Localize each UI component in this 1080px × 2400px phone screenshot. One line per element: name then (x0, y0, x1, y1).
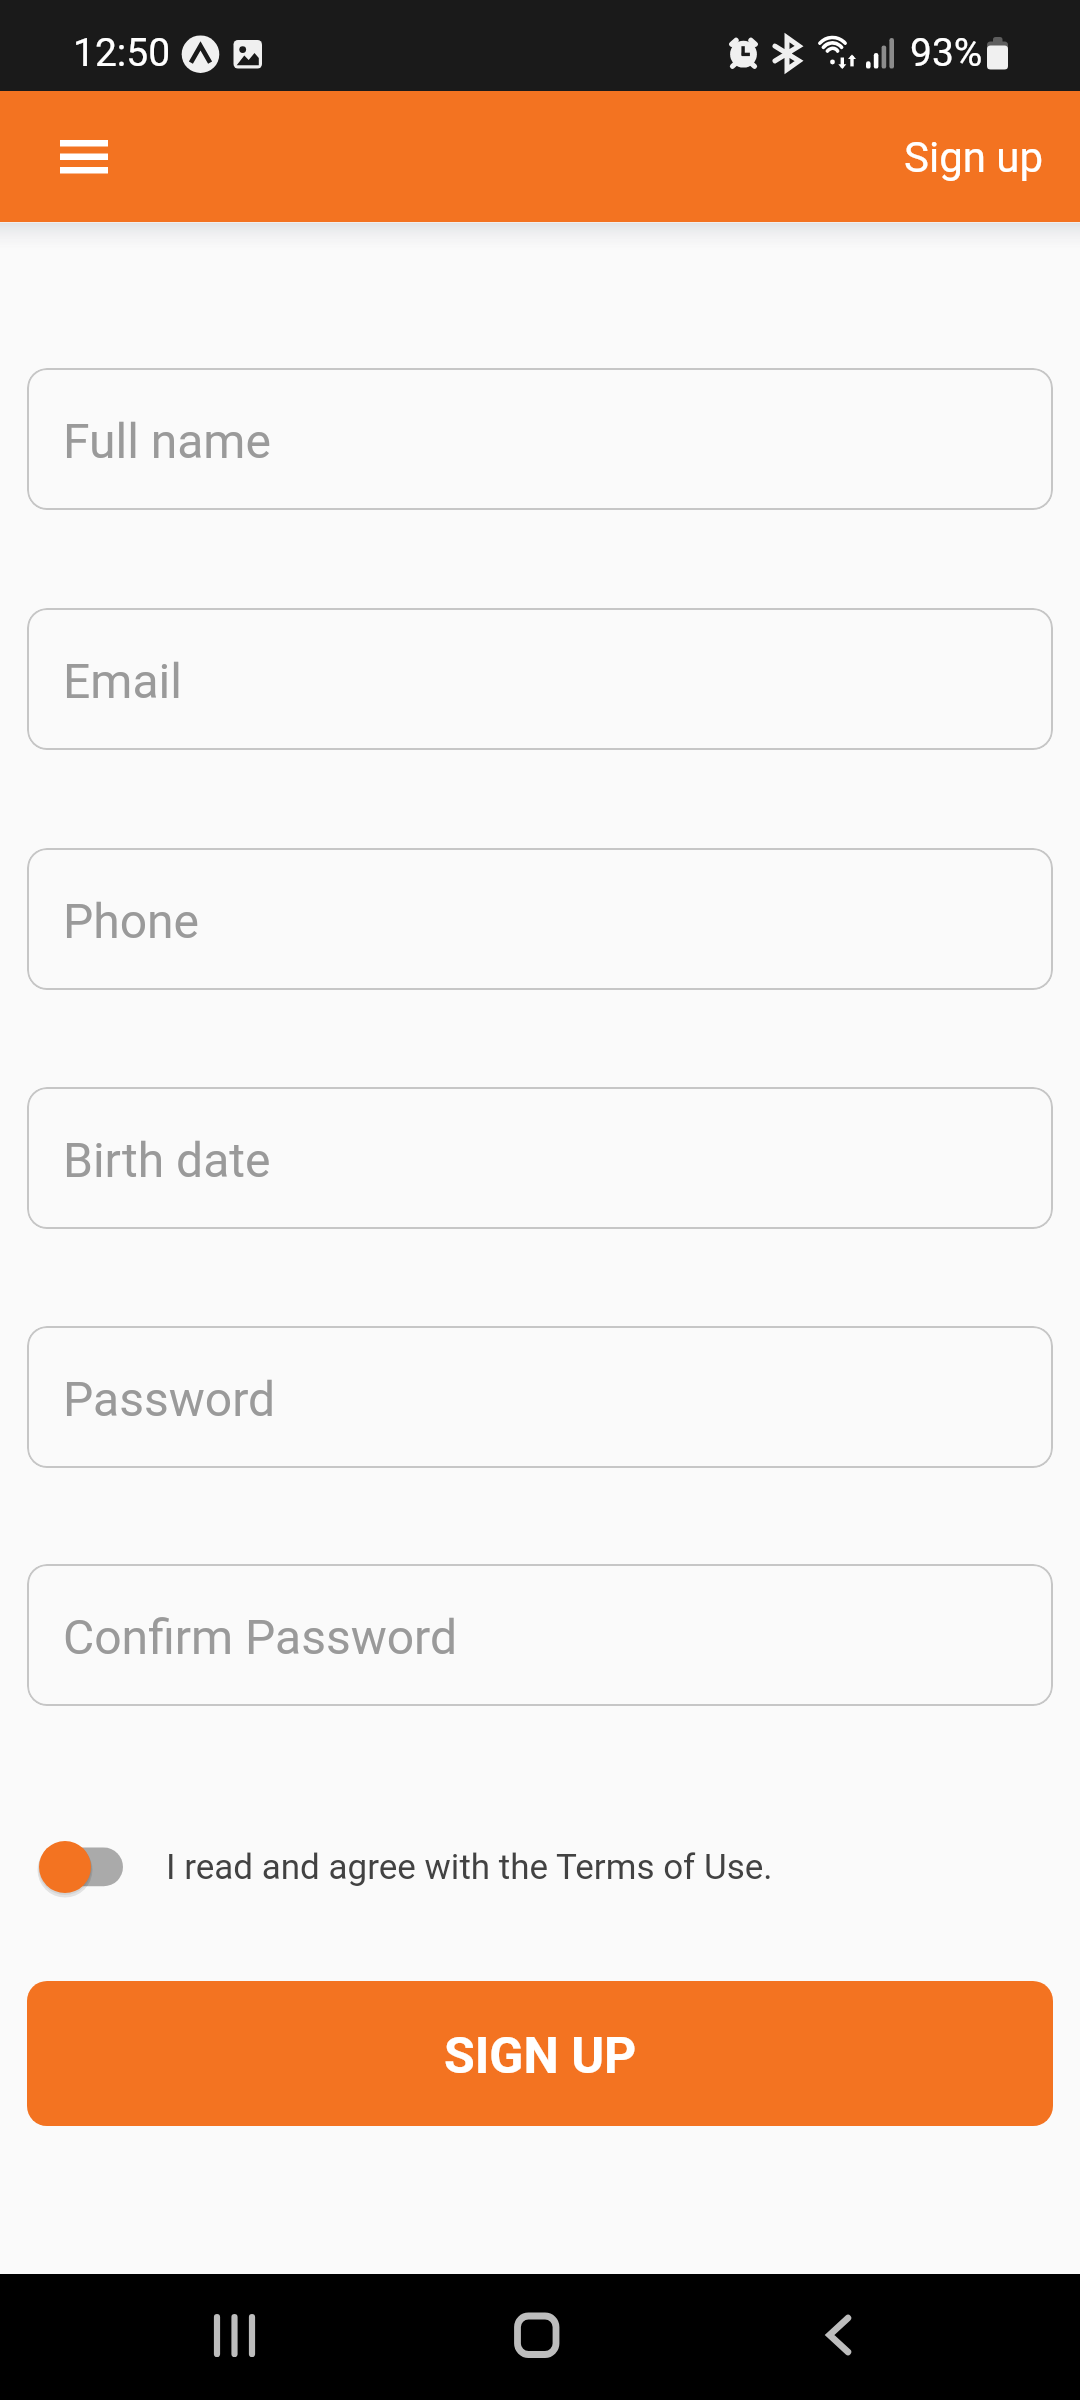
button[interactable]: Full name (27, 368, 1053, 510)
staticText: Confirm Password (63, 1609, 458, 1665)
button[interactable]: Phone (27, 848, 1053, 990)
staticText: I read and agree with the Terms of Use. (166, 1847, 773, 1888)
staticText: Password (63, 1371, 276, 1427)
button[interactable]: Confirm Password (27, 1564, 1053, 1706)
button[interactable]: Password (27, 1326, 1053, 1468)
button[interactable]: I read and agree with the Terms of Use t… (20, 1832, 148, 1902)
button[interactable]: Email (27, 608, 1053, 750)
staticText: Phone (63, 893, 200, 949)
button[interactable]: Home (477, 2274, 597, 2400)
staticText: Email (63, 653, 182, 709)
staticText: 93% (910, 30, 983, 76)
button[interactable]: Sign up (880, 91, 1080, 222)
button[interactable]: SIGN UP (27, 1981, 1053, 2126)
staticText: Sign up (904, 133, 1044, 182)
staticText: 12:50 (73, 30, 171, 76)
staticText: Birth date (63, 1132, 271, 1188)
button[interactable]: I read and agree with the Terms of Use. (166, 1832, 773, 1902)
button[interactable]: Open navigation menu (24, 91, 144, 222)
button[interactable]: Back (778, 2274, 898, 2400)
button[interactable]: Recent apps (174, 2274, 294, 2400)
staticText: SIGN UP (444, 2027, 637, 2086)
button[interactable]: Birth date (27, 1087, 1053, 1229)
staticText: Full name (63, 413, 271, 469)
